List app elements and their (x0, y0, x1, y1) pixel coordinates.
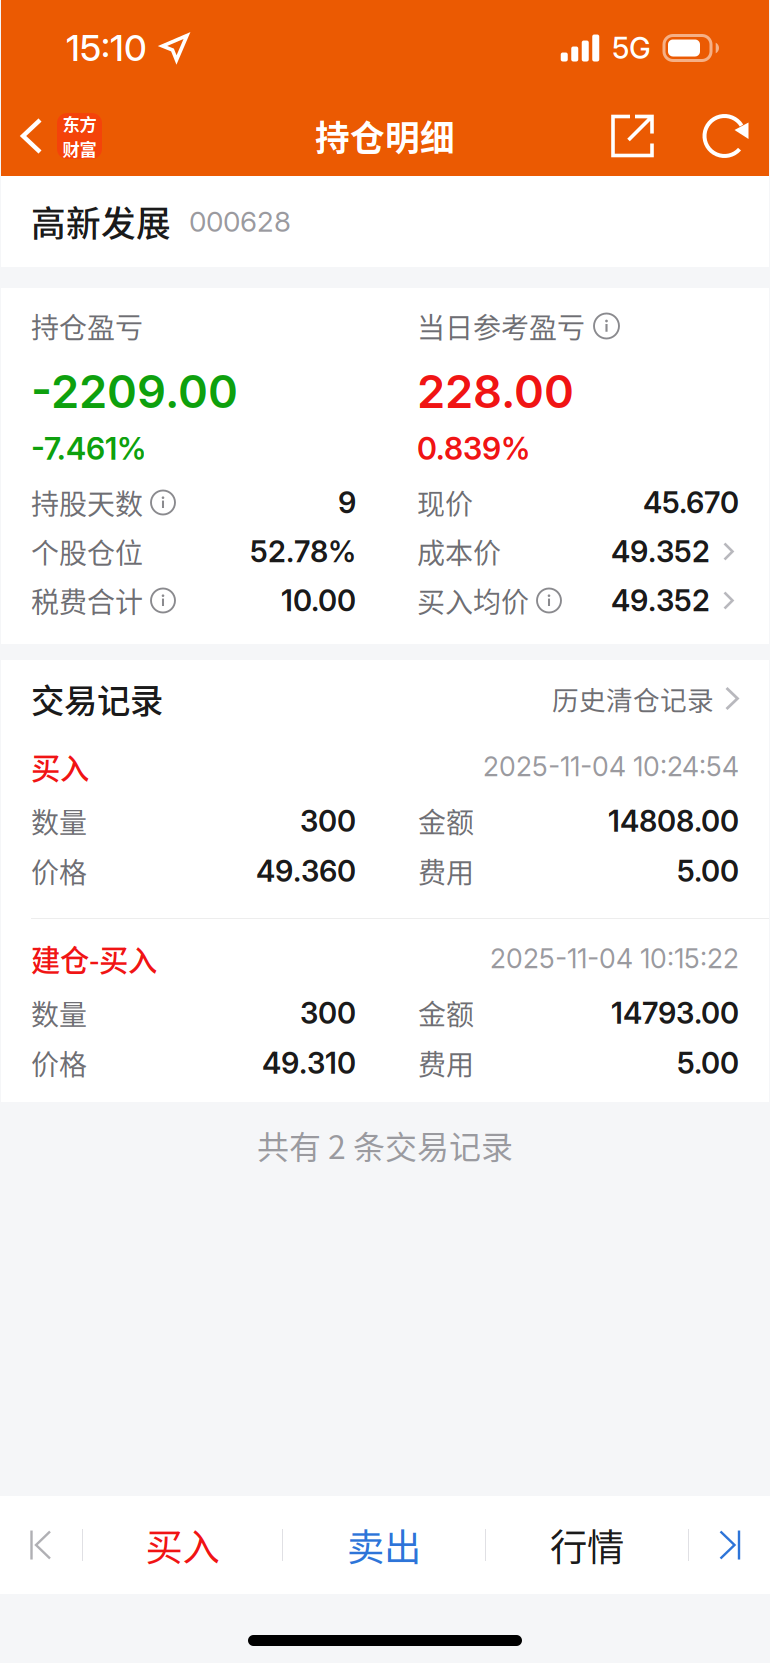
staticText: 金额 (418, 801, 474, 841)
staticText: 0.839% (417, 430, 530, 467)
button[interactable]: 卖出 (283, 1496, 485, 1594)
button[interactable]: 行情 (486, 1496, 688, 1594)
staticText: 10.00 (281, 583, 356, 618)
staticText: 14793.00 (611, 995, 739, 1031)
button[interactable]: First page (0, 1496, 82, 1594)
staticText: 行情 (550, 1518, 624, 1572)
staticText: 费用 (418, 851, 474, 891)
staticText: 49.352 (611, 583, 710, 618)
staticText: 数量 (31, 993, 87, 1033)
staticText: 费用 (418, 1043, 474, 1083)
staticText: 金额 (418, 993, 474, 1033)
staticText: 5G (612, 30, 651, 66)
staticText: 45.670 (643, 485, 739, 520)
staticText: 9 (338, 485, 356, 520)
staticText: 5.00 (677, 1045, 739, 1081)
staticText: 财富 (62, 136, 96, 161)
staticText: 东方 (62, 111, 96, 136)
button[interactable]: 买入 (83, 1496, 282, 1594)
staticText: 历史清仓记录 (552, 679, 714, 718)
staticText: 买入 (31, 745, 89, 788)
staticText: 成本价 (417, 531, 501, 572)
staticText: 税费合计 (31, 580, 143, 621)
staticText: 当日参考盈亏 (417, 306, 585, 346)
staticText: 交易记录 (31, 674, 163, 723)
staticText: 现价 (417, 482, 473, 523)
button[interactable]: Back (1, 96, 110, 176)
staticText: 000628 (189, 205, 291, 238)
staticText: 2025-11-04 10:24:54 (483, 750, 739, 783)
staticText: 持股天数 (31, 482, 143, 523)
staticText: 300 (300, 803, 356, 839)
staticText: 价格 (31, 1043, 87, 1083)
staticText: -7.461% (31, 430, 146, 467)
staticText: -2209.00 (31, 364, 238, 419)
button[interactable]: 成本价 (417, 527, 739, 576)
staticText: 持仓明细 (315, 111, 455, 161)
staticText: 49.352 (611, 534, 710, 569)
staticText: 卖出 (347, 1518, 421, 1572)
staticText: 49.310 (262, 1045, 356, 1081)
button[interactable]: Last page (689, 1496, 770, 1594)
staticText: 52.78% (250, 534, 356, 569)
staticText: 个股仓位 (31, 531, 143, 572)
staticText: 买入 (145, 1518, 219, 1572)
button[interactable]: 历史清仓记录 (552, 679, 739, 718)
button[interactable]: Refresh (690, 96, 763, 176)
staticText: 49.360 (256, 853, 356, 889)
staticText: 共有 2 条交易记录 (257, 1122, 513, 1168)
staticText: 14808.00 (608, 803, 739, 839)
staticText: 数量 (31, 801, 87, 841)
staticText: 5.00 (677, 853, 739, 889)
staticText: 价格 (31, 851, 87, 891)
staticText: 建仓-买入 (31, 937, 157, 980)
staticText: 持仓盈亏 (31, 306, 143, 346)
staticText: 2025-11-04 10:15:22 (490, 942, 739, 975)
staticText: 300 (300, 995, 356, 1031)
staticText: 高新发展 (31, 196, 171, 247)
staticText: 15:10 (66, 26, 147, 70)
button[interactable]: 买入均价 (417, 576, 739, 625)
staticText: 买入均价 (417, 580, 529, 621)
button[interactable]: Share (596, 96, 669, 176)
staticText: 228.00 (417, 364, 574, 419)
